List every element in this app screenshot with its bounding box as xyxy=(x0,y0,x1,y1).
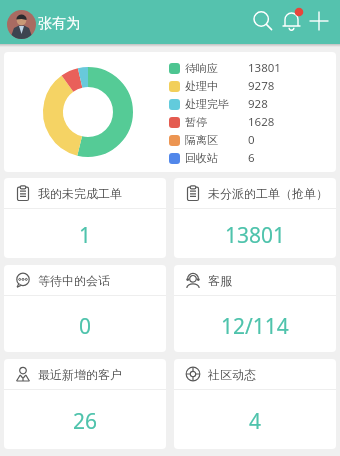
button[interactable] xyxy=(279,5,307,33)
staticText: 回收站 xyxy=(185,151,218,165)
button[interactable] xyxy=(306,8,332,34)
staticText: 6 xyxy=(248,150,255,166)
staticText: 客服 xyxy=(208,273,232,288)
staticText: 26 xyxy=(73,407,98,436)
staticText: 1628 xyxy=(248,114,275,130)
staticText: 我的未完成工单 xyxy=(38,186,122,201)
button[interactable]: 社区动态 xyxy=(174,359,336,449)
staticText: 928 xyxy=(248,96,268,112)
staticText: 4 xyxy=(249,407,262,436)
staticText: 13801 xyxy=(225,221,286,250)
button[interactable] xyxy=(7,10,36,39)
staticText: 张有为 xyxy=(38,15,80,33)
staticText: 12/114 xyxy=(221,312,289,341)
staticText: 暂停 xyxy=(185,115,207,129)
staticText: 隔离区 xyxy=(185,133,218,147)
button[interactable]: 客服 xyxy=(174,265,336,352)
staticText: 处理完毕 xyxy=(185,97,229,111)
staticText: 待响应 xyxy=(185,61,218,75)
staticText: 0 xyxy=(79,312,92,341)
staticText: 社区动态 xyxy=(208,367,256,382)
button[interactable]: 最近新增的客户 xyxy=(4,359,166,449)
button[interactable]: 我的未完成工单 xyxy=(4,178,166,258)
button[interactable]: 待响应 xyxy=(4,52,336,172)
staticText: 未分派的工单（抢单） xyxy=(208,186,328,201)
button[interactable]: 未分派的工单（抢单） xyxy=(174,178,336,258)
staticText: 等待中的会话 xyxy=(38,273,110,288)
button[interactable] xyxy=(249,7,275,33)
staticText: 处理中 xyxy=(185,79,218,93)
staticText: 1 xyxy=(79,221,92,250)
staticText: 13801 xyxy=(248,60,281,76)
staticText: 9278 xyxy=(248,78,275,94)
staticText: 0 xyxy=(248,132,255,148)
staticText: 最近新增的客户 xyxy=(38,367,122,382)
button[interactable]: 等待中的会话 xyxy=(4,265,166,352)
